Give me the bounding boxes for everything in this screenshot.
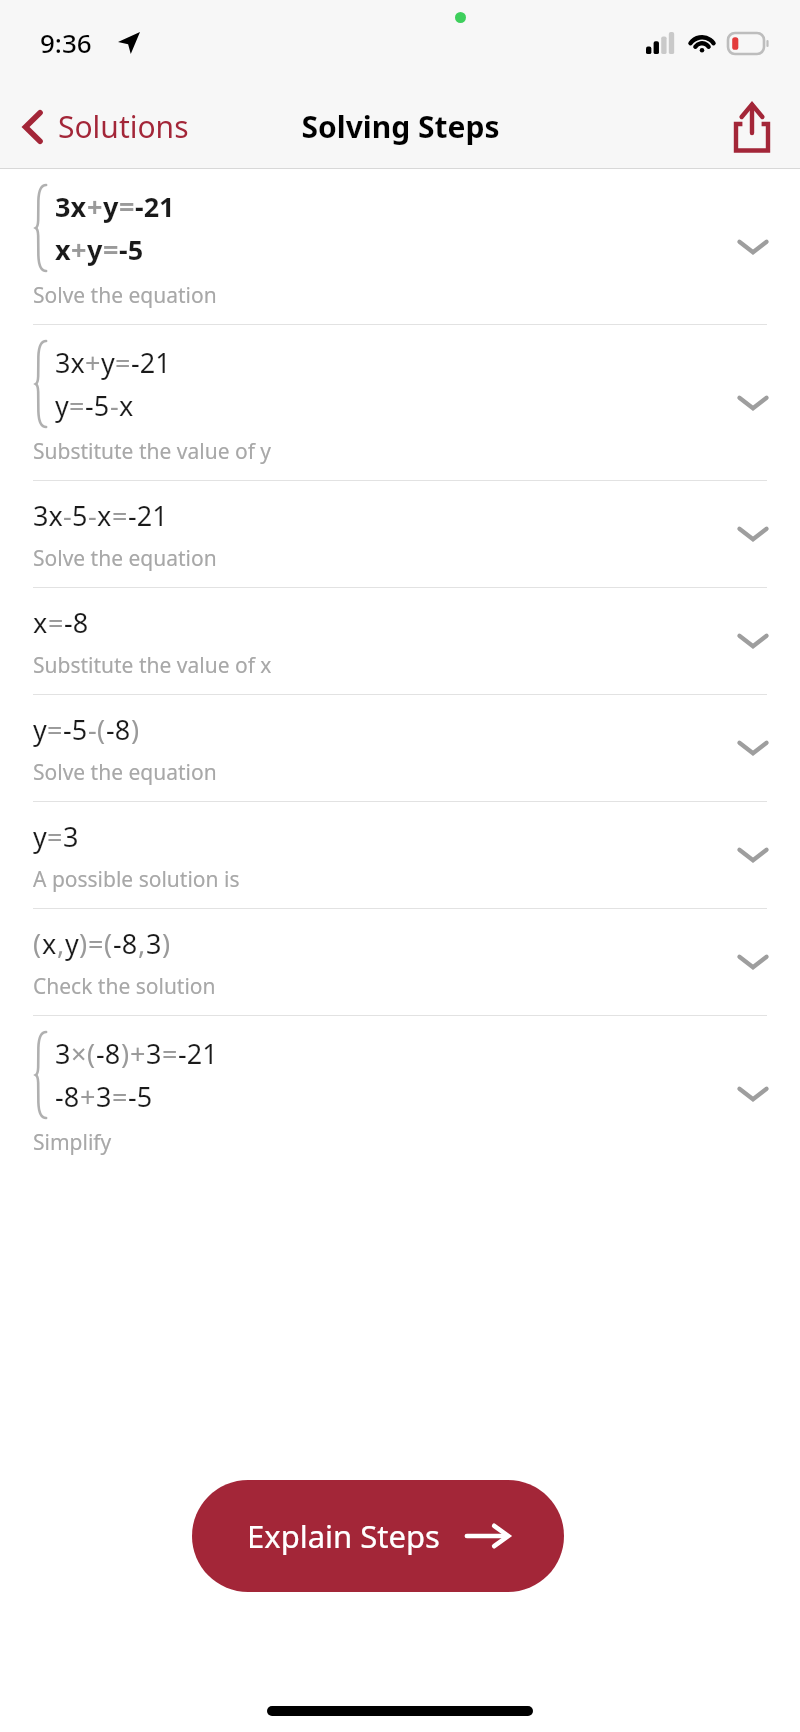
staticText: =	[119, 188, 135, 225]
staticText: )	[162, 925, 171, 962]
staticText: Solve the equation	[33, 758, 217, 787]
staticText: y	[55, 387, 69, 424]
staticText: ,	[138, 925, 146, 962]
staticText: +	[71, 231, 87, 268]
staticText: -	[63, 497, 72, 534]
staticText: (	[87, 1035, 96, 1072]
staticText: Solutions	[58, 106, 189, 147]
staticText: 3	[146, 925, 162, 962]
staticText: Solve the equation	[33, 544, 217, 573]
staticText: (	[97, 711, 106, 748]
staticText: 5	[72, 497, 88, 534]
staticText: x	[42, 925, 57, 962]
staticText: -21	[178, 1035, 218, 1072]
button[interactable]: 3x	[0, 481, 800, 587]
staticText: y	[33, 818, 47, 855]
staticText: Substitute the value of y	[33, 437, 272, 466]
staticText: x	[33, 604, 48, 641]
staticText: )	[131, 711, 140, 748]
staticText: Solving Steps	[301, 106, 500, 147]
staticText: -	[88, 711, 97, 748]
staticText: )	[79, 925, 88, 962]
staticText: =	[112, 497, 128, 534]
staticText: -8	[64, 604, 89, 641]
staticText: =	[115, 344, 131, 381]
staticText: Check the solution	[33, 972, 216, 1001]
staticText: +	[130, 1035, 146, 1072]
button[interactable]: y	[0, 695, 800, 801]
staticText: Explain Steps	[247, 1515, 440, 1557]
staticText: =	[47, 818, 63, 855]
staticText: y	[65, 925, 79, 962]
staticText: y	[33, 711, 47, 748]
staticText: )	[121, 1035, 130, 1072]
staticText: -8	[106, 711, 131, 748]
staticText: +	[80, 1078, 96, 1115]
staticText: -21	[135, 188, 175, 225]
staticText: y	[103, 188, 119, 225]
staticText: y	[101, 344, 115, 381]
staticText: -5	[85, 387, 110, 424]
staticText: =	[162, 1035, 178, 1072]
staticText: =	[69, 387, 85, 424]
button[interactable]: y	[0, 802, 800, 908]
staticText: +	[87, 188, 103, 225]
staticText: -8	[96, 1035, 121, 1072]
staticText: 3	[55, 1035, 71, 1072]
staticText: -21	[131, 344, 171, 381]
staticText: 3x	[33, 497, 63, 534]
staticText: =	[48, 604, 64, 641]
staticText: -8	[55, 1078, 80, 1115]
staticText: (	[104, 925, 113, 962]
staticText: Solve the equation	[33, 281, 217, 310]
button[interactable]: Explain Steps	[192, 1480, 564, 1592]
staticText: 9:36	[40, 25, 92, 60]
staticText: x	[119, 387, 134, 424]
staticText: +	[85, 344, 101, 381]
button[interactable]: 3x	[0, 169, 800, 324]
staticText: -	[88, 497, 97, 534]
staticText: -21	[128, 497, 168, 534]
button[interactable]: (	[0, 909, 800, 1015]
staticText: 3	[96, 1078, 112, 1115]
staticText: -5	[128, 1078, 153, 1115]
staticText: Substitute the value of x	[33, 651, 272, 680]
staticText: -8	[113, 925, 138, 962]
staticText: 3	[146, 1035, 162, 1072]
staticText: ,	[57, 925, 65, 962]
staticText: =	[103, 231, 119, 268]
staticText: 3x	[55, 344, 85, 381]
staticText: x	[55, 231, 71, 268]
staticText: x	[97, 497, 112, 534]
staticText: -	[110, 387, 119, 424]
staticText: 3x	[55, 188, 87, 225]
button[interactable]: 3	[0, 1016, 800, 1171]
staticText: Simplify	[33, 1128, 112, 1157]
button[interactable]: 3x	[0, 325, 800, 480]
staticText: =	[88, 925, 104, 962]
staticText: 3	[63, 818, 79, 855]
staticText: y	[87, 231, 103, 268]
staticText: (	[33, 925, 42, 962]
staticText: -5	[63, 711, 88, 748]
staticText: =	[47, 711, 63, 748]
staticText: =	[112, 1078, 128, 1115]
staticText: ×	[71, 1035, 87, 1072]
button[interactable]: Share	[718, 94, 800, 160]
staticText: A possible solution is	[33, 865, 240, 894]
button[interactable]: x	[0, 588, 800, 694]
staticText: -5	[119, 231, 144, 268]
button[interactable]: Solutions	[0, 98, 203, 155]
